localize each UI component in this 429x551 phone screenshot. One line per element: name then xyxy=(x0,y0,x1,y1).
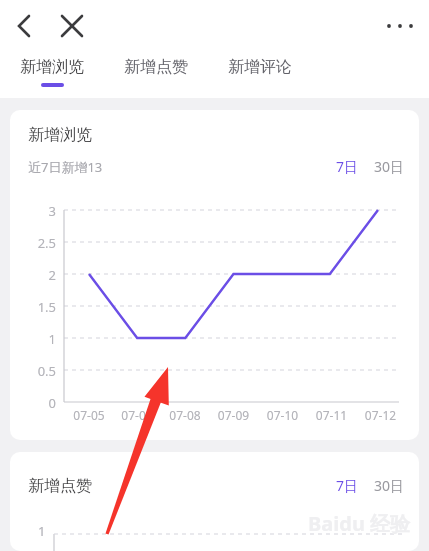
staticText: 07-08 xyxy=(161,407,209,423)
staticText: 07-10 xyxy=(258,407,307,423)
staticText: 新增点赞 xyxy=(124,57,188,77)
staticText: 07-06 xyxy=(113,407,161,423)
staticText: 2 xyxy=(10,266,56,284)
staticText: 新增浏览 xyxy=(20,57,84,77)
staticText: 3 xyxy=(10,202,56,220)
button[interactable]: 7日 xyxy=(334,472,361,499)
staticText: 7日 xyxy=(336,476,359,495)
staticText: 1.5 xyxy=(10,298,56,316)
button[interactable]: 新增点赞 xyxy=(104,55,208,89)
staticText: 近7日新增13 xyxy=(28,158,103,176)
staticText: 07-09 xyxy=(209,407,258,423)
staticText: 新增浏览 xyxy=(28,125,92,145)
staticText: 30日 xyxy=(374,476,405,495)
staticText: 2.5 xyxy=(10,234,56,252)
staticText: 1 xyxy=(10,330,56,348)
button[interactable]: 新增浏览 xyxy=(0,55,104,89)
staticText: 新增评论 xyxy=(228,57,292,77)
button[interactable]: 新增评论 xyxy=(208,55,312,89)
button[interactable]: Back xyxy=(4,6,44,46)
staticText: 07-05 xyxy=(65,407,113,423)
button[interactable]: 30日 xyxy=(372,472,407,499)
staticText: Baidu 经验 xyxy=(308,510,411,534)
button[interactable]: 7日 xyxy=(334,153,361,180)
staticText: 30日 xyxy=(374,157,405,176)
button[interactable]: More options xyxy=(380,6,420,46)
staticText: 0 xyxy=(10,394,56,412)
staticText: 新增点赞 xyxy=(28,476,92,496)
staticText: 07-12 xyxy=(356,407,405,423)
button[interactable]: Close xyxy=(52,6,92,46)
staticText: 0.5 xyxy=(10,362,56,380)
staticText: 7日 xyxy=(336,157,359,176)
button[interactable]: 30日 xyxy=(372,153,407,180)
staticText: 07-11 xyxy=(307,407,356,423)
staticText: 1 xyxy=(38,522,46,540)
